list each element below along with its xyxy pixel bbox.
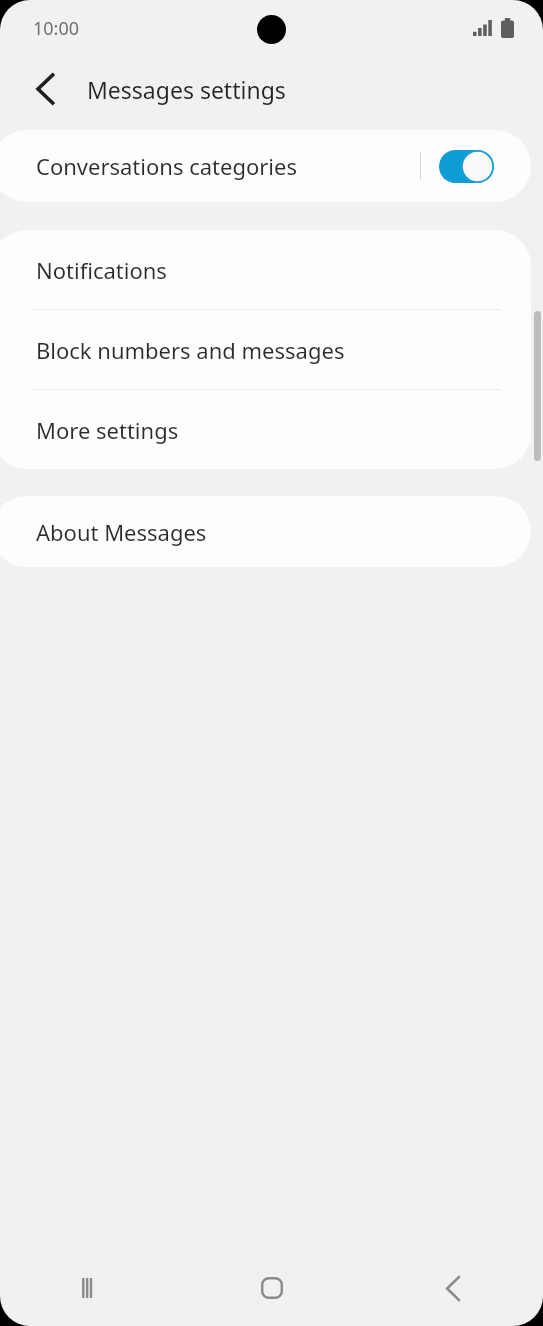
staticText: Conversations categories xyxy=(36,151,420,181)
button[interactable]: More settings xyxy=(0,390,531,469)
staticText: About Messages xyxy=(36,517,207,547)
button[interactable]: About Messages xyxy=(0,496,531,567)
staticText: More settings xyxy=(36,415,179,445)
button[interactable]: Home xyxy=(181,1258,362,1318)
staticText: 10:00 xyxy=(33,16,80,41)
button[interactable]: Recent apps xyxy=(0,1258,181,1318)
staticText: Block numbers and messages xyxy=(36,335,345,365)
button[interactable]: Back xyxy=(362,1258,543,1318)
staticText: Messages settings xyxy=(87,74,286,105)
staticText: Notifications xyxy=(36,255,167,285)
button[interactable]: Navigate up xyxy=(22,66,68,112)
button[interactable]: Block numbers and messages xyxy=(0,310,531,389)
button[interactable]: Conversations categories xyxy=(0,130,531,202)
button[interactable]: Notifications xyxy=(0,230,531,309)
button[interactable]: Conversations categories toggle xyxy=(439,150,494,183)
